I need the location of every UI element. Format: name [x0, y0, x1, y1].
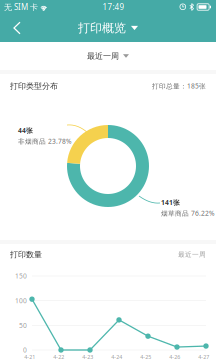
staticText: 非烟商品 23.78%: [18, 137, 72, 146]
staticText: 44张: [18, 126, 33, 135]
staticText: 141张: [161, 198, 180, 207]
staticText: 打印总量：185张: [152, 82, 206, 90]
staticText: 无 SIM 卡: [4, 2, 38, 12]
staticText: 4-22: [53, 353, 64, 360]
button[interactable]: 最近一周: [178, 250, 206, 259]
staticText: 4-21: [24, 353, 35, 360]
staticText: 打印概览: [78, 21, 126, 35]
staticText: 最近一周: [87, 51, 119, 61]
staticText: 50: [19, 321, 27, 330]
staticText: 打印数量: [10, 250, 42, 259]
staticText: 4-23: [82, 353, 93, 360]
staticText: 100: [15, 296, 27, 305]
staticText: 0: [23, 346, 27, 354]
staticText: 4-25: [140, 353, 151, 360]
staticText: 4-26: [169, 353, 180, 360]
staticText: 最近一周: [178, 250, 206, 259]
button[interactable]: 打印概览: [72, 14, 144, 42]
staticText: 4-24: [111, 353, 122, 360]
button[interactable]: 最近一周: [0, 42, 216, 70]
staticText: 4-27: [198, 353, 209, 360]
staticText: 打印类型分布: [10, 81, 58, 91]
button[interactable]: 返回: [0, 14, 32, 42]
staticText: 150: [15, 272, 27, 280]
staticText: 17:49: [102, 2, 124, 12]
staticText: 烟草商品 76.22%: [161, 209, 215, 218]
